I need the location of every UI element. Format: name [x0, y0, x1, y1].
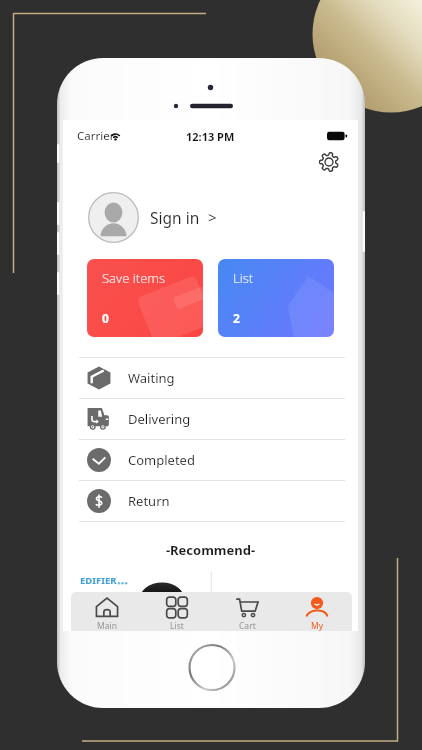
- staticText: Return: [128, 492, 170, 510]
- button[interactable]: Settings: [317, 152, 341, 172]
- button[interactable]: Save items: [87, 259, 203, 337]
- staticText: List: [233, 269, 254, 287]
- button[interactable]: Waiting: [63, 358, 358, 398]
- staticText: Save items: [102, 269, 166, 287]
- button[interactable]: Sign in: [63, 187, 358, 247]
- staticText: Main: [97, 620, 117, 631]
- button[interactable]: Cart: [212, 592, 282, 631]
- button[interactable]: Completed: [63, 440, 358, 480]
- staticText: Completed: [128, 451, 195, 469]
- button[interactable]: Return: [63, 481, 358, 521]
- staticText: List: [170, 620, 184, 631]
- staticText: Sign in: [150, 207, 200, 228]
- button[interactable]: My: [282, 592, 352, 631]
- button[interactable]: List: [142, 592, 212, 631]
- button[interactable]: Main: [71, 592, 142, 631]
- staticText: Delivering: [128, 410, 191, 428]
- staticText: Waiting: [128, 369, 175, 387]
- staticText: EDIFIER: [80, 574, 117, 587]
- staticText: >: [208, 207, 217, 227]
- staticText: Cart: [239, 620, 256, 631]
- button[interactable]: Delivering: [63, 399, 358, 439]
- button[interactable]: List: [218, 259, 334, 337]
- staticText: 2: [233, 310, 240, 326]
- staticText: 12:13 PM: [186, 129, 235, 144]
- staticText: My: [311, 620, 324, 631]
- staticText: 0: [102, 310, 109, 326]
- staticText: -Recommend-: [63, 541, 358, 559]
- staticText: Carrier: [77, 128, 115, 144]
